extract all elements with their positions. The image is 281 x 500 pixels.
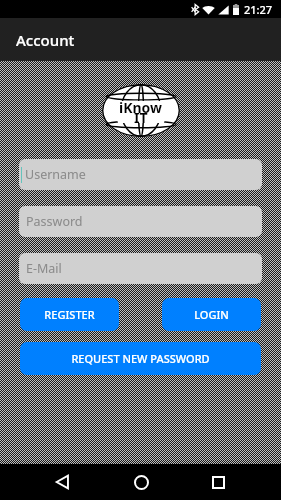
button[interactable]: Account [0, 18, 281, 61]
staticText: iKnow [119, 98, 163, 117]
staticText: REGISTER [44, 307, 95, 322]
staticText: Account [16, 30, 75, 50]
button[interactable]: Password [19, 206, 262, 237]
button[interactable]: Recents [198, 464, 238, 500]
staticText: LOGIN [194, 307, 229, 322]
button[interactable]: Back [42, 464, 82, 500]
button[interactable]: E-Mail [19, 253, 262, 284]
staticText: Password [26, 213, 83, 230]
staticText: E-Mail [26, 260, 62, 277]
button[interactable]: Home [121, 464, 161, 500]
staticText: Username [25, 166, 86, 183]
staticText: REQUEST NEW PASSWORD [71, 351, 210, 366]
staticText: 21:27 [244, 2, 273, 17]
button[interactable]: REQUEST NEW PASSWORD [20, 342, 261, 375]
staticText: IT [134, 108, 148, 127]
button[interactable]: REGISTER [20, 298, 119, 331]
button[interactable]: Username [19, 159, 262, 190]
button[interactable]: LOGIN [162, 298, 261, 331]
